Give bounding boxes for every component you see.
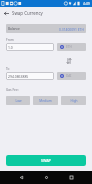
staticText: From [6, 38, 14, 42]
button[interactable]: Low [6, 96, 30, 105]
staticText: Swap Currency [12, 10, 43, 16]
button[interactable]: Back [9, 171, 34, 184]
staticText: To [6, 67, 10, 71]
staticText: High [70, 99, 78, 103]
button[interactable]: High [61, 96, 86, 105]
button[interactable]: Home [34, 171, 59, 184]
staticText: Balance [8, 27, 20, 31]
button[interactable]: ETH [57, 43, 86, 51]
staticText: 4:49 [83, 1, 90, 6]
button[interactable]: 294.0863885 [6, 72, 54, 80]
staticText: Gas Fee: [6, 88, 19, 92]
staticText: SWAP [41, 158, 51, 163]
staticText: Low [15, 99, 22, 103]
staticText: 1.0 [8, 45, 13, 50]
staticText: 294.0863885 [8, 74, 29, 79]
button[interactable]: DAI [57, 72, 86, 80]
button[interactable]: Medium [33, 96, 58, 105]
button[interactable]: Balance [6, 24, 86, 33]
button[interactable]: SWAP [6, 155, 86, 166]
staticText: 0.31400091 ETH [59, 27, 84, 31]
staticText: ETH [66, 45, 72, 49]
button[interactable]: 1.0 [6, 43, 54, 51]
staticText: Medium [39, 99, 52, 103]
button[interactable]: Swap direction [65, 57, 73, 65]
button[interactable]: Back [0, 7, 12, 19]
button[interactable]: Recent apps [59, 171, 84, 184]
staticText: DAI [66, 74, 72, 78]
